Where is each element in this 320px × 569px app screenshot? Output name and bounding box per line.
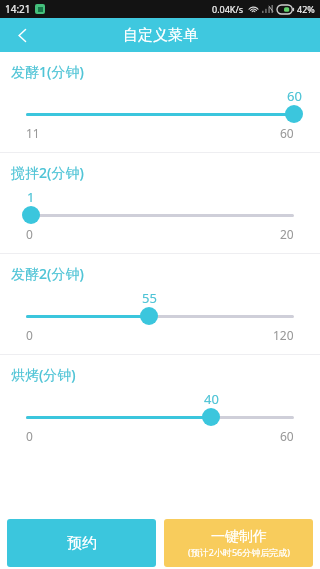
staticText: 55 xyxy=(142,289,157,306)
staticText: 预约 xyxy=(67,534,97,553)
button[interactable]: Back xyxy=(0,18,44,52)
button[interactable] xyxy=(26,306,294,326)
staticText: 0.04K/s xyxy=(212,3,244,15)
staticText: 美食天下 xyxy=(110,534,182,557)
staticText: 一键制作 xyxy=(211,528,267,546)
button[interactable]: 预约 xyxy=(7,519,156,567)
staticText: 11 xyxy=(26,125,40,141)
staticText: 0 xyxy=(26,428,33,444)
staticText: 发酵1(分钟) xyxy=(11,62,84,81)
staticText: 烘烤(分钟) xyxy=(11,365,76,384)
staticText: 0 xyxy=(26,327,33,343)
staticText: 60 xyxy=(287,87,302,104)
staticText: 60 xyxy=(280,428,294,444)
staticText: 0 xyxy=(26,226,33,242)
button[interactable] xyxy=(26,205,294,225)
staticText: 20 xyxy=(280,226,294,242)
staticText: 42% xyxy=(297,3,315,15)
staticText: 120 xyxy=(273,327,294,343)
button[interactable] xyxy=(26,104,294,124)
staticText: 搅拌2(分钟) xyxy=(11,163,84,182)
button[interactable]: 一键制作 xyxy=(164,519,313,567)
staticText: 40 xyxy=(204,390,219,407)
staticText: 1 xyxy=(27,188,35,205)
staticText: 14:21 xyxy=(5,2,31,16)
staticText: 发酵2(分钟) xyxy=(11,264,84,283)
staticText: 60 xyxy=(280,125,294,141)
staticText: 自定义菜单 xyxy=(123,26,198,45)
staticText: (预计2小时56分钟后完成) xyxy=(188,546,290,558)
button[interactable] xyxy=(26,407,294,427)
